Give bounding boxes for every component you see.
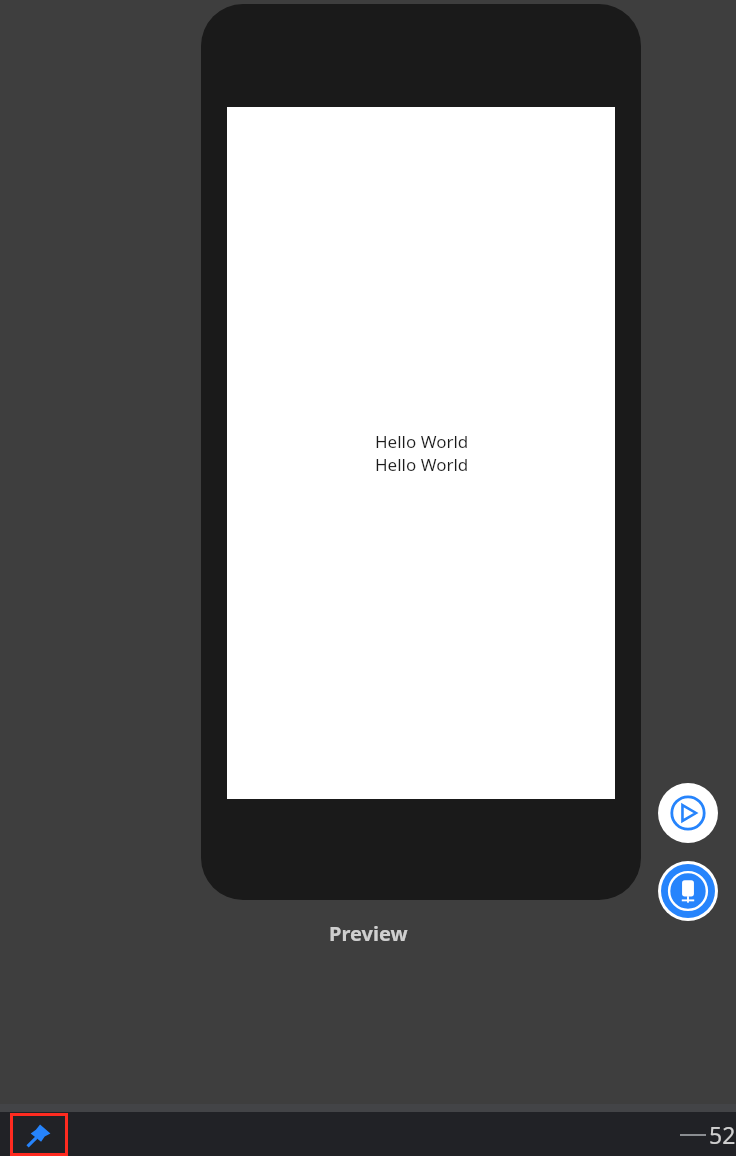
button[interactable]: 52 bbox=[680, 1119, 736, 1150]
staticText: Preview bbox=[329, 920, 408, 947]
button[interactable]: Run preview bbox=[658, 783, 718, 843]
staticText: Hello World bbox=[375, 453, 469, 476]
button[interactable]: Pin preview bbox=[10, 1113, 68, 1156]
staticText: 52 bbox=[709, 1119, 736, 1150]
button[interactable]: Deploy preview to device bbox=[658, 861, 718, 921]
staticText: Hello World bbox=[375, 430, 469, 453]
